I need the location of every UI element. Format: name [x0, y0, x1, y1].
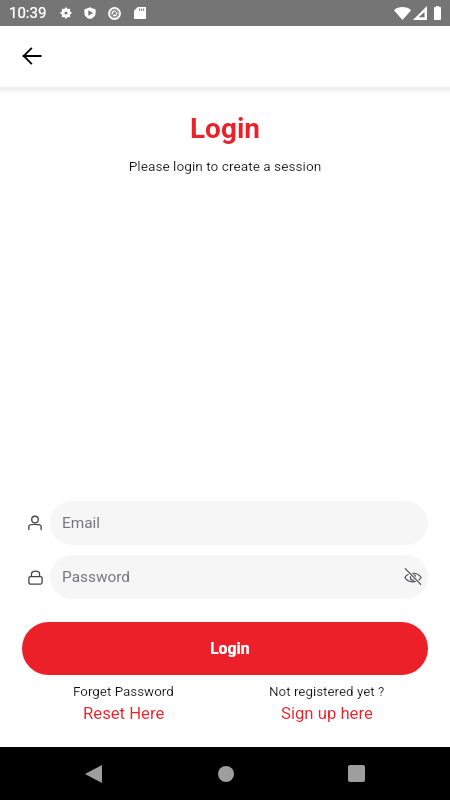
button[interactable]: Forget Password — [22, 684, 225, 724]
button[interactable]: Back — [11, 35, 53, 77]
staticText: Not registered yet ? — [269, 684, 385, 700]
button[interactable]: Toggle password visibility — [400, 564, 426, 590]
button[interactable]: Password — [50, 555, 428, 599]
button[interactable]: Not registered yet ? — [225, 684, 428, 724]
staticText: Forget Password — [73, 684, 174, 700]
staticText: Sign up here — [281, 704, 373, 724]
staticText: Login — [210, 639, 250, 658]
button[interactable]: Recent apps — [334, 751, 379, 796]
staticText: Password — [62, 568, 130, 586]
button[interactable]: Email — [50, 501, 428, 545]
button[interactable]: Login — [22, 622, 428, 675]
staticText: Email — [62, 514, 101, 532]
staticText: Login — [0, 112, 450, 145]
staticText: Reset Here — [83, 704, 165, 724]
button[interactable]: Back — [71, 751, 116, 796]
button[interactable]: Home — [203, 751, 248, 796]
staticText: 10:39 — [9, 4, 47, 22]
staticText: Please login to create a session — [0, 158, 450, 174]
